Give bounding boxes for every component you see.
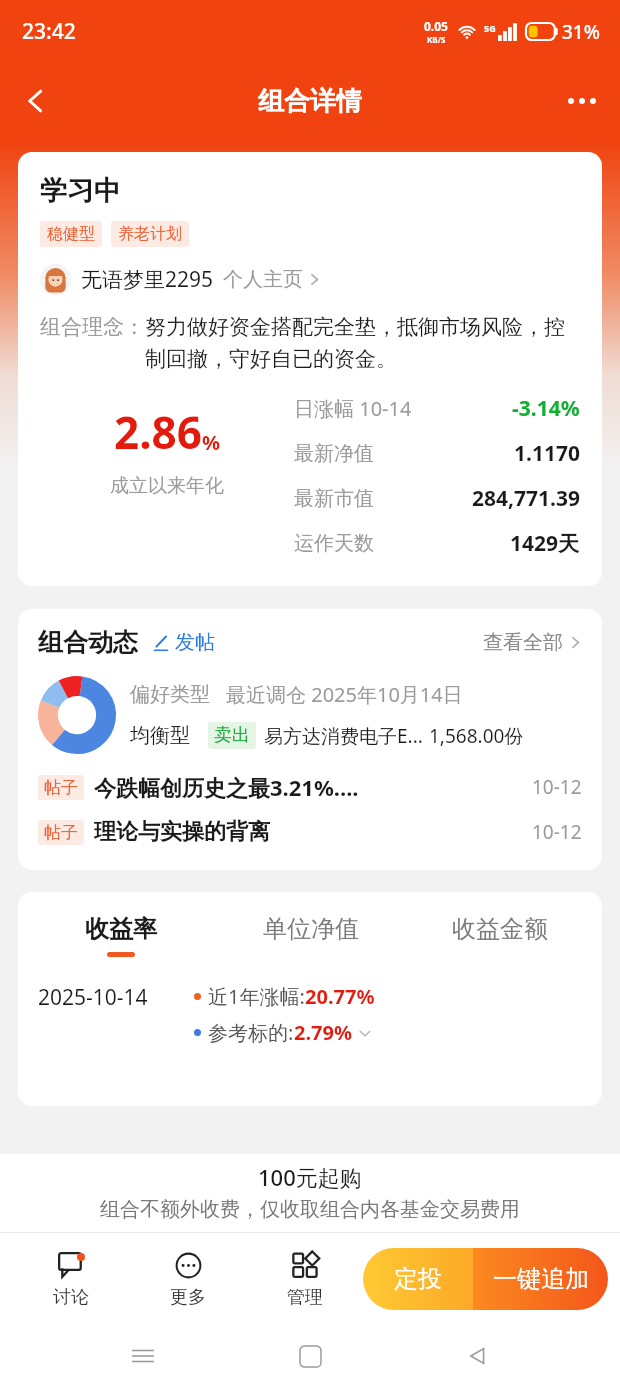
staticText: 1429天 — [510, 529, 580, 558]
button[interactable]: 收益率 — [26, 910, 216, 961]
staticText: 帖子 — [44, 777, 78, 798]
staticText: 5G — [484, 22, 496, 34]
staticText: 1,568.00份 — [429, 723, 524, 749]
staticText: 查看全部 — [483, 630, 563, 655]
staticText: 2025-10-14 — [38, 983, 148, 1012]
button[interactable]: 一键追加 — [473, 1248, 608, 1310]
button[interactable]: More options — [554, 73, 610, 129]
button[interactable]: 定投 — [363, 1248, 473, 1310]
staticText: 日涨幅 10-14 — [294, 395, 412, 422]
staticText: 偏好类型 — [130, 682, 210, 707]
staticText: 易方达消费电子E... — [264, 723, 423, 749]
staticText: 今跌幅创历史之最3.21%.... — [94, 772, 359, 802]
button[interactable]: Back — [453, 1332, 501, 1380]
staticText: 组合详情 — [258, 85, 362, 118]
staticText: 10-12 — [532, 819, 582, 845]
staticText: 最新市值 — [294, 486, 374, 511]
button[interactable]: Back — [8, 73, 64, 129]
staticText: 0.05 — [424, 18, 448, 34]
staticText: 均衡型 — [130, 723, 190, 748]
staticText: 学习中 — [40, 174, 121, 208]
staticText: 努力做好资金搭配完全垫，抵御市场风险，控制回撤，守好自已的资金。 — [145, 314, 580, 372]
staticText: 讨论 — [53, 1286, 89, 1309]
button[interactable]: 查看全部 — [483, 630, 582, 655]
staticText: 2.79% — [294, 1019, 352, 1046]
staticText: 运作天数 — [294, 531, 374, 556]
staticText: 2.86 — [114, 402, 202, 462]
staticText: 10-12 — [532, 774, 582, 800]
button[interactable]: 偏好类型 — [38, 676, 524, 754]
staticText: 近1年涨幅: — [208, 983, 305, 1010]
staticText: 一键追加 — [493, 1264, 589, 1294]
staticText: 发帖 — [175, 630, 215, 655]
staticText: 定投 — [394, 1264, 442, 1294]
staticText: 组合动态 — [38, 627, 138, 658]
staticText: 稳健型 — [47, 224, 95, 244]
staticText: 收益金额 — [452, 914, 548, 944]
staticText: 成立以来年化 — [110, 474, 224, 498]
button[interactable]: Recents — [119, 1332, 167, 1380]
button[interactable]: 无语梦里2295 — [40, 264, 321, 295]
staticText: 最近调仓 2025年10月14日 — [226, 681, 463, 708]
staticText: -3.14% — [512, 394, 580, 423]
staticText: 参考标的: — [208, 1019, 294, 1046]
staticText: 帖子 — [44, 822, 78, 843]
staticText: 无语梦里2295 — [81, 265, 214, 294]
button[interactable]: 管理 — [246, 1246, 363, 1313]
staticText: 卖出 — [214, 724, 250, 747]
staticText: 养老计划 — [118, 224, 182, 244]
staticText: 单位净值 — [263, 914, 359, 944]
button[interactable]: 帖子 — [38, 772, 582, 802]
staticText: 更多 — [170, 1286, 206, 1309]
staticText: 1.1170 — [514, 439, 580, 468]
button[interactable]: 单位净值 — [216, 910, 405, 961]
staticText: 284,771.39 — [472, 484, 580, 513]
button[interactable]: 讨论 — [12, 1246, 129, 1313]
staticText: 组合理念： — [40, 314, 145, 340]
staticText: 31% — [562, 19, 600, 45]
staticText: 个人主页 — [223, 267, 303, 292]
button[interactable]: 更多 — [129, 1246, 246, 1313]
button[interactable]: 收益金额 — [405, 910, 594, 961]
staticText: 23:42 — [22, 17, 76, 46]
staticText: 理论与实操的背离 — [94, 818, 270, 846]
staticText: 100元起购 — [258, 1162, 362, 1192]
button[interactable]: 帖子 — [38, 818, 582, 846]
staticText: 20.77% — [305, 983, 375, 1010]
staticText: 组合不额外收费，仅收取组合内各基金交易费用 — [100, 1197, 520, 1222]
button[interactable]: 发帖 — [152, 630, 215, 655]
staticText: 管理 — [287, 1286, 323, 1309]
staticText: 最新净值 — [294, 441, 374, 466]
staticText: % — [202, 429, 221, 456]
button[interactable]: Home — [286, 1332, 334, 1380]
staticText: 收益率 — [85, 914, 157, 944]
staticText: KB/S — [427, 34, 446, 45]
